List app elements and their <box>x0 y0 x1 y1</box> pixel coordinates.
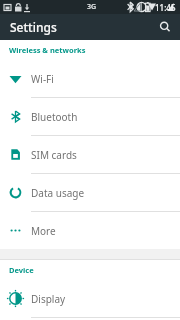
button[interactable]: Bluetooth <box>0 98 180 135</box>
button[interactable]: Search <box>154 16 176 38</box>
staticText: Bluetooth <box>31 110 78 124</box>
button[interactable]: Wi-Fi <box>0 60 180 97</box>
staticText: Settings <box>10 19 57 35</box>
staticText: SIM cards <box>31 148 77 162</box>
button[interactable]: More <box>0 212 180 249</box>
staticText: 3G <box>87 2 97 12</box>
staticText: 11:45 <box>155 2 176 13</box>
staticText: Device <box>9 265 34 275</box>
staticText: More <box>31 224 56 238</box>
staticText: Wireless & networks <box>9 45 86 55</box>
staticText: Wi-Fi <box>31 72 54 86</box>
button[interactable]: SIM cards <box>0 136 180 173</box>
button[interactable]: Data usage <box>0 174 180 211</box>
button[interactable]: Display <box>0 280 180 317</box>
staticText: Data usage <box>31 186 85 200</box>
staticText: Display <box>31 292 66 306</box>
